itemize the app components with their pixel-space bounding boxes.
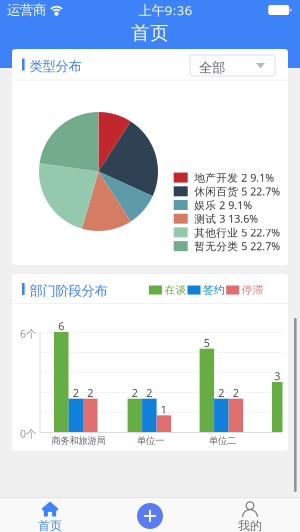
staticText: 2 [132,386,138,400]
staticText: 2 [233,386,239,400]
staticText: 休闲百货 5 22.7% [194,184,280,198]
staticText: 2 [146,386,152,400]
staticText: 其他行业 5 22.7% [194,225,280,239]
staticText: 全部 [199,59,225,76]
staticText: 我的 [238,518,262,532]
staticText: 类型分布 [29,58,81,74]
staticText: 测试 3 13.6% [194,212,258,226]
staticText: 1 [161,402,167,416]
staticText: 单位一 [137,435,164,446]
staticText: 签约 [203,283,225,297]
staticText: 6 [58,319,64,333]
staticText: 2 [73,386,79,400]
staticText: 3 [274,369,280,383]
staticText: 娱乐 2 9.1% [194,198,252,212]
button[interactable]: 新建 [137,503,163,529]
staticText: 5 [204,336,210,350]
button[interactable]: 我的 [200,497,300,532]
staticText: 2 [218,386,224,400]
staticText: 在谈 [164,283,186,297]
staticText: 上午9:36 [139,1,193,19]
staticText: 暂无分类 5 22.7% [194,239,280,253]
staticText: 首页 [38,518,62,532]
staticText: 部门阶段分布 [29,282,107,299]
button[interactable]: 全部 [190,55,275,76]
staticText: 2 [87,386,93,400]
staticText: 0个 [20,426,37,441]
staticText: 6个 [20,326,37,341]
staticText: 首页 [131,21,169,44]
button[interactable]: 首页 [0,497,100,532]
staticText: 地产开发 2 9.1% [194,170,274,185]
staticText: 运营商 [7,2,46,18]
staticText: 停滞 [242,283,264,297]
staticText: 商务和旅游局 [51,435,105,446]
staticText: 单位二 [209,435,236,446]
